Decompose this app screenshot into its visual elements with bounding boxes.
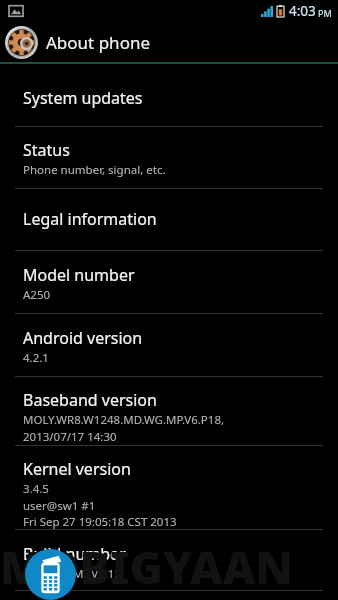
button[interactable]: Android version — [0, 314, 338, 376]
staticText: Kernel version — [23, 458, 131, 480]
staticText: 3.4.5 user@sw1 #1 Fri Sep 27 19:05:18 CS… — [23, 481, 177, 529]
staticText: About phone — [46, 31, 151, 54]
staticText: Phone number, signal, etc. — [23, 162, 166, 178]
button[interactable]: System updates — [0, 64, 338, 126]
staticText: ALPS.JB3.MP.V1.12 — [23, 566, 122, 582]
staticText: Baseband version — [23, 389, 157, 411]
staticText: Build number — [23, 543, 126, 565]
button[interactable]: Model number — [0, 251, 338, 313]
staticText: System updates — [23, 87, 143, 109]
button[interactable]: Legal information — [0, 189, 338, 250]
button[interactable]: About phone, up — [0, 22, 338, 62]
staticText: PM — [318, 7, 332, 19]
button[interactable]: Build number — [0, 530, 338, 590]
staticText: A250 — [23, 287, 51, 303]
button[interactable]: Baseband version — [0, 377, 338, 445]
staticText: MOBIGYAAN — [0, 536, 293, 597]
staticText: Model number — [23, 264, 135, 286]
staticText: 4.2.1 — [23, 350, 49, 366]
staticText: Android version — [23, 327, 143, 349]
button[interactable]: Status — [0, 127, 338, 188]
button[interactable]: Kernel version — [0, 446, 338, 529]
staticText: Status — [23, 139, 70, 161]
staticText: Legal information — [23, 208, 157, 230]
staticText: 4:03 — [289, 2, 316, 20]
staticText: MOLY.WR8.W1248.MD.WG.MP.V6.P18, 2013/07/… — [23, 412, 225, 444]
